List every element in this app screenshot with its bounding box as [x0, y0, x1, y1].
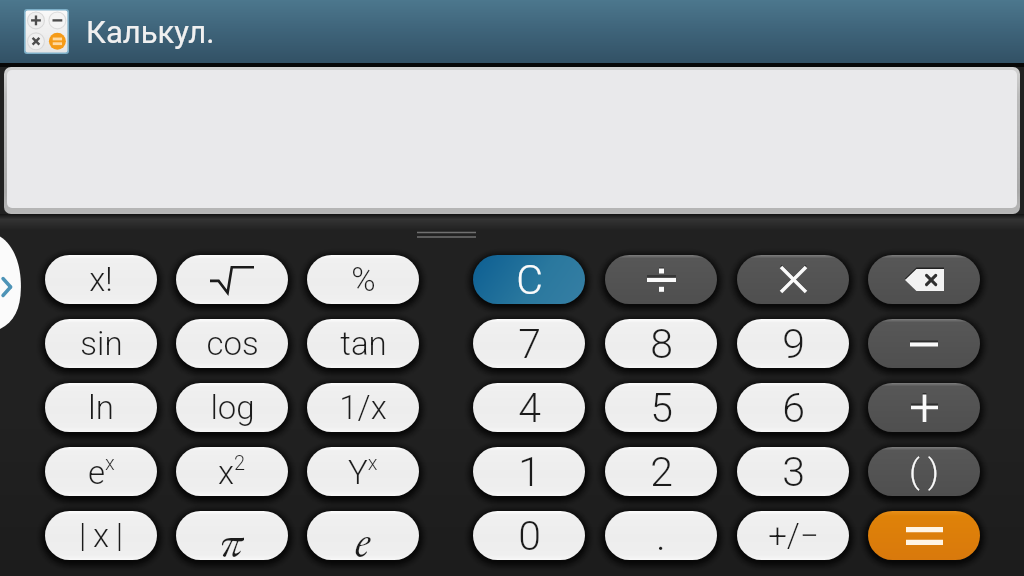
staticText: 7 [518, 320, 541, 368]
button[interactable]: |x| [45, 511, 157, 560]
button[interactable]: x! [45, 255, 157, 304]
button[interactable]: tan [307, 319, 419, 368]
staticText: % [351, 260, 376, 299]
button[interactable]: divide [605, 255, 717, 304]
staticText: +/− [768, 516, 819, 555]
button[interactable]: Open history panel [0, 233, 22, 332]
button[interactable]: 6 [737, 383, 849, 432]
staticText: tan [340, 324, 387, 363]
staticText: e [355, 511, 371, 560]
staticText: 8 [650, 320, 673, 368]
button[interactable]: +/− [737, 511, 849, 560]
staticText: π [220, 511, 244, 560]
button[interactable]: Display [4, 67, 1020, 214]
button[interactable]: 2 [605, 447, 717, 496]
staticText: 1 [518, 448, 541, 496]
button[interactable]: 1/x [307, 383, 419, 432]
button[interactable]: plus [868, 383, 980, 432]
staticText: 9 [782, 320, 805, 368]
staticText: x! [89, 260, 113, 299]
button[interactable]: 4 [473, 383, 585, 432]
button[interactable]: x squared [176, 447, 288, 496]
staticText: x2 [218, 451, 246, 492]
button[interactable]: minus [868, 319, 980, 368]
staticText: sin [80, 324, 123, 363]
button[interactable]: 5 [605, 383, 717, 432]
button[interactable]: % [307, 255, 419, 304]
button[interactable]: square root [176, 255, 288, 304]
button[interactable]: ln [45, 383, 157, 432]
staticText: 4 [518, 384, 541, 432]
button[interactable]: ( ) [868, 447, 980, 496]
staticText: 5 [650, 384, 673, 432]
button[interactable]: sin [45, 319, 157, 368]
staticText: 3 [782, 448, 805, 496]
staticText: | x | [79, 516, 124, 555]
staticText: 6 [782, 384, 805, 432]
staticText: Yx [348, 451, 378, 492]
button[interactable]: . [605, 511, 717, 560]
button[interactable]: multiply [737, 255, 849, 304]
staticText: ex [88, 451, 115, 492]
button[interactable]: C [473, 255, 585, 304]
staticText: Калькул. [86, 14, 215, 50]
staticText: cos [206, 324, 259, 363]
staticText: C [516, 256, 543, 304]
button[interactable]: Y to the power x [307, 447, 419, 496]
button[interactable]: equals [868, 511, 980, 560]
staticText: 2 [650, 448, 673, 496]
button[interactable]: 0 [473, 511, 585, 560]
button[interactable]: e to the power x [45, 447, 157, 496]
button[interactable]: pi [176, 511, 288, 560]
staticText: 0 [518, 512, 541, 560]
button[interactable]: delete [868, 255, 980, 304]
staticText: 1/x [339, 388, 387, 427]
button[interactable]: 1 [473, 447, 585, 496]
button[interactable]: 7 [473, 319, 585, 368]
staticText: ( ) [909, 452, 939, 491]
button[interactable]: 3 [737, 447, 849, 496]
staticText: . [656, 512, 666, 560]
staticText: ln [88, 388, 114, 427]
button[interactable]: log [176, 383, 288, 432]
other: Calculator [24, 9, 69, 54]
button[interactable]: 9 [737, 319, 849, 368]
button[interactable]: e [307, 511, 419, 560]
staticText: log [210, 388, 255, 427]
button[interactable]: 8 [605, 319, 717, 368]
button[interactable]: cos [176, 319, 288, 368]
